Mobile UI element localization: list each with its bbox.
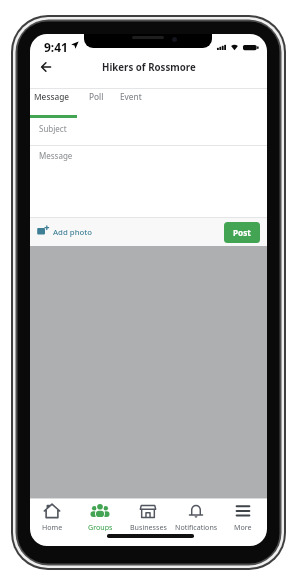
- staticText: Home: [42, 522, 63, 531]
- staticText: Groups: [88, 522, 113, 531]
- button[interactable]: Message: [30, 146, 267, 218]
- button[interactable]: Message: [30, 86, 77, 107]
- button[interactable]: [40, 61, 52, 73]
- button[interactable]: Groups: [76, 499, 124, 545]
- staticText: More: [234, 522, 252, 531]
- button[interactable]: Home: [30, 499, 76, 545]
- staticText: Poll: [89, 91, 104, 102]
- staticText: Subject: [39, 123, 67, 134]
- button[interactable]: Notifications: [172, 499, 220, 545]
- button[interactable]: Post: [224, 222, 260, 243]
- staticText: 9:41: [44, 39, 68, 53]
- staticText: Post: [233, 227, 251, 238]
- staticText: Hikers of Rossmore: [102, 61, 196, 74]
- staticText: Message: [39, 150, 73, 161]
- staticText: Notifications: [175, 522, 218, 531]
- button[interactable]: Businesses: [124, 499, 172, 545]
- button[interactable]: Add photo: [30, 218, 130, 246]
- staticText: Businesses: [130, 522, 167, 531]
- staticText: Event: [120, 91, 142, 102]
- button[interactable]: More: [220, 499, 265, 545]
- staticText: Add photo: [53, 227, 93, 238]
- button[interactable]: Subject: [30, 118, 267, 139]
- button[interactable]: Event: [115, 86, 151, 107]
- staticText: Message: [34, 91, 70, 102]
- button[interactable]: Poll: [77, 86, 115, 107]
